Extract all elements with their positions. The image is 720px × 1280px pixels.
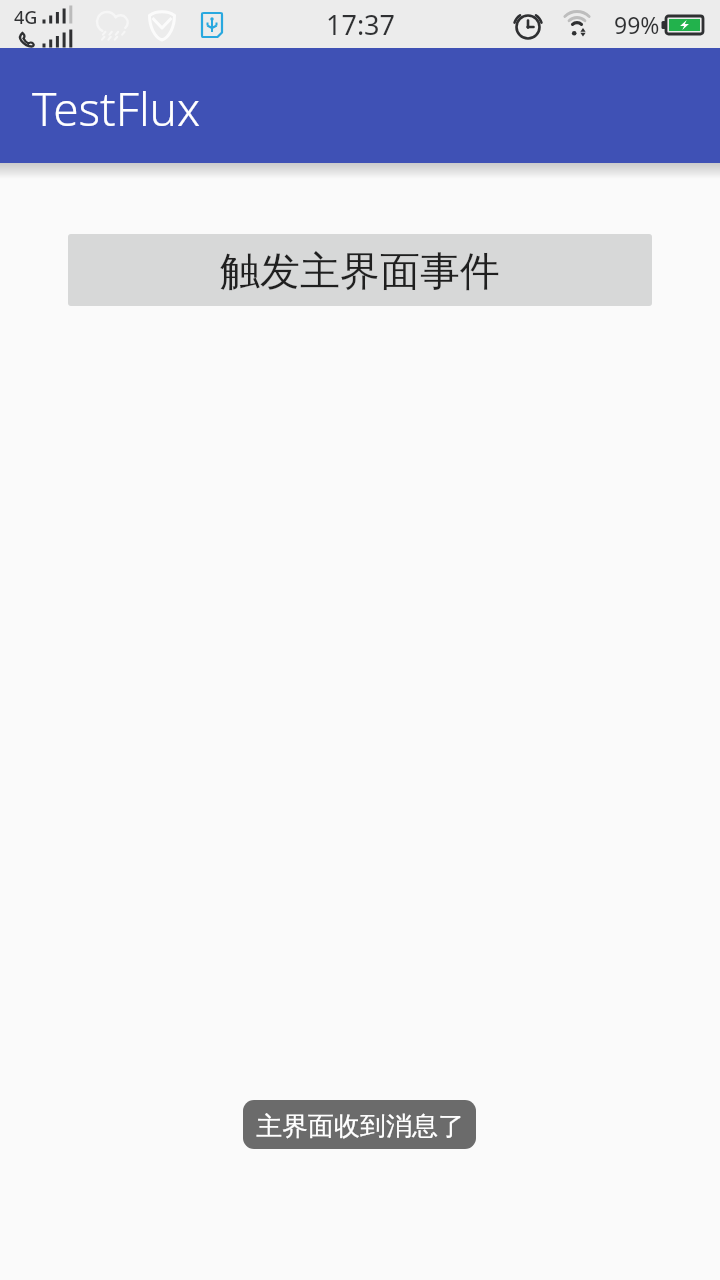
staticText: 触发主界面事件: [220, 246, 500, 296]
button[interactable]: 触发主界面事件: [68, 234, 652, 306]
staticText: 4G: [14, 5, 38, 30]
staticText: 主界面收到消息了: [256, 1110, 464, 1143]
staticText: TestFlux: [32, 77, 201, 140]
other: Status icons: 4G signal, call signal, ra…: [0, 0, 720, 48]
staticText: 17:37: [326, 6, 396, 43]
staticText: 99%: [614, 9, 660, 40]
